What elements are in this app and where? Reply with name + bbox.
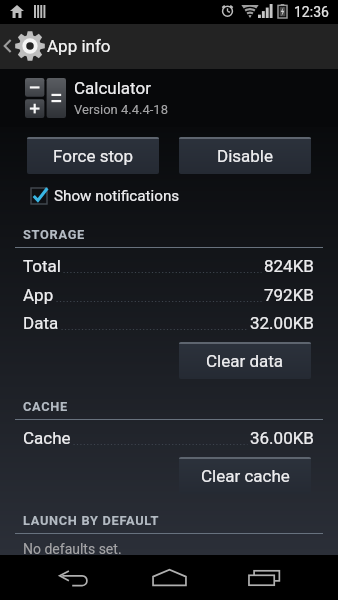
staticText: Total [23,256,61,276]
staticText: Cache [23,428,71,448]
staticText: 12:36 [294,4,329,20]
button[interactable]: Recent apps [230,555,298,600]
button[interactable]: Back [41,555,109,600]
staticText: App [23,285,54,305]
button[interactable]: Clear data [179,342,311,379]
staticText: Version 4.4.4-18 [74,102,168,117]
staticText: 792KB [264,285,314,305]
button[interactable]: Home [135,555,203,600]
staticText: 32.00KB [250,313,314,333]
staticText: Data [23,313,59,333]
staticText: 824KB [264,256,314,276]
staticText: Clear data [206,351,284,371]
button[interactable]: Data [23,313,314,336]
staticText: No defaults set. [23,541,122,557]
staticText: LAUNCH BY DEFAULT [23,513,160,528]
button[interactable]: Total [23,256,314,279]
button[interactable]: App [23,285,314,308]
staticText: Disable [217,146,274,166]
staticText: STORAGE [23,227,85,242]
staticText: App info [47,36,111,56]
button[interactable]: Disable [179,137,311,174]
button[interactable]: Show notifications [31,182,180,210]
staticText: Show notifications [54,187,180,205]
staticText: Clear cache [201,466,290,486]
button[interactable]: Navigate up [0,24,338,69]
button[interactable]: Cache [23,428,314,451]
staticText: Calculator [74,78,151,98]
other: Navigate up [4,39,11,53]
staticText: 36.00KB [250,428,314,448]
button[interactable]: Force stop [27,137,159,174]
button[interactable]: Clear cache [179,457,311,494]
staticText: Force stop [53,146,134,166]
staticText: CACHE [23,399,68,414]
